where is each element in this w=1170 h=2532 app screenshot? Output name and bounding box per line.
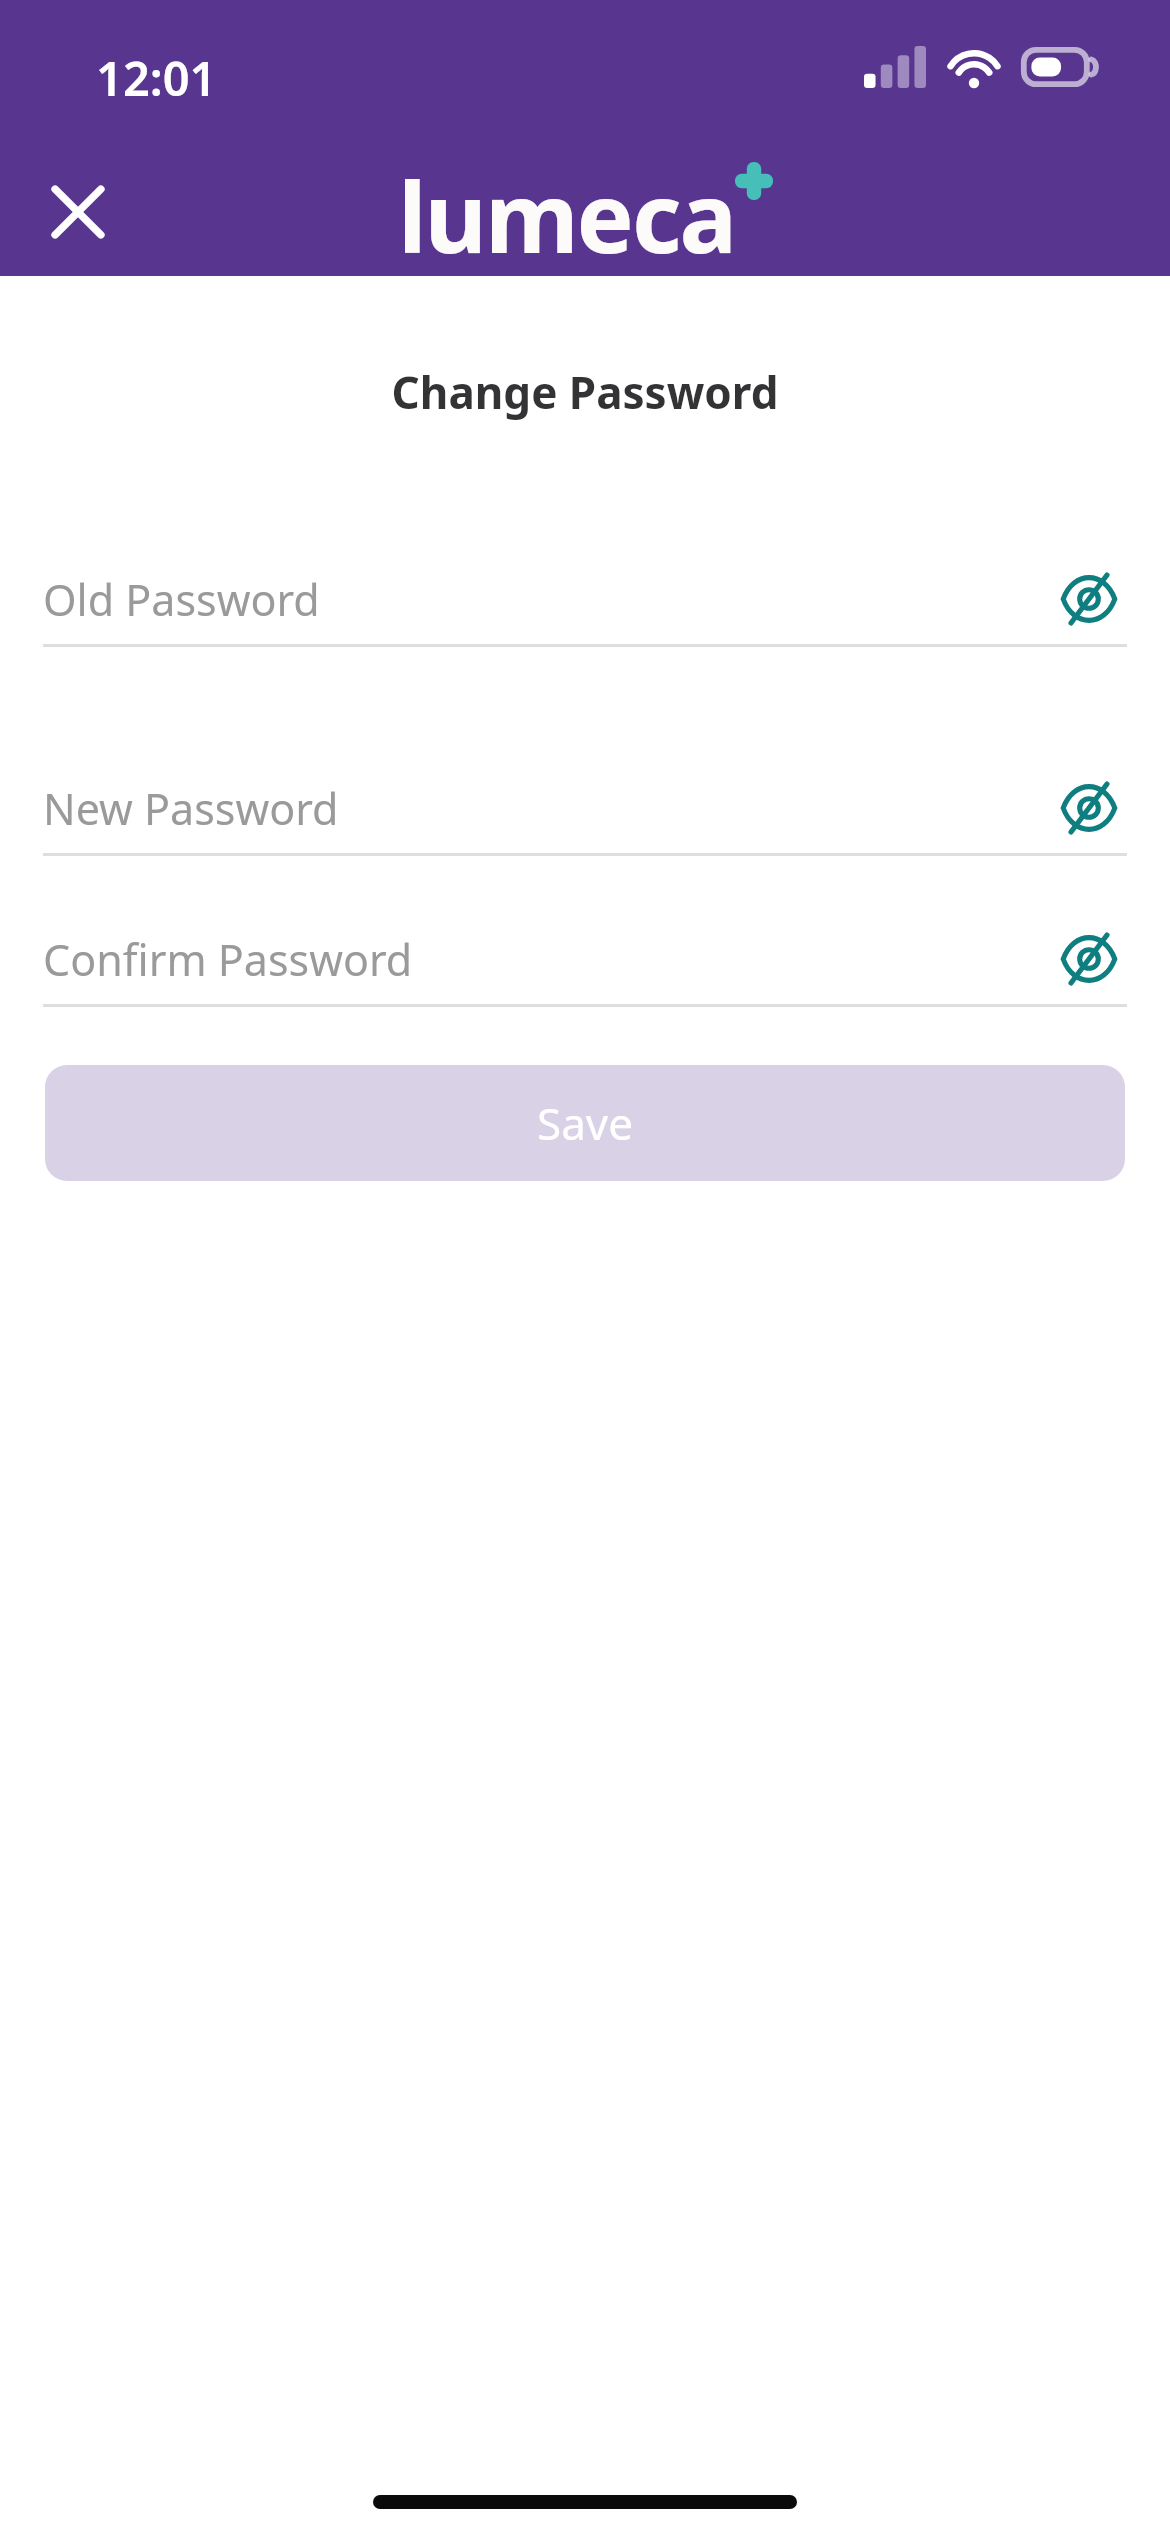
button[interactable]: Save [45,1065,1125,1181]
button[interactable]: Close [28,162,128,262]
button[interactable]: Show password [1051,561,1127,637]
staticText: Change Password [0,362,1170,422]
button[interactable]: Show password [1051,921,1127,997]
staticText: New Password [43,779,1051,838]
staticText: Old Password [43,570,1051,629]
staticText: Confirm Password [43,930,1051,989]
button[interactable]: Old Password [43,554,1127,647]
staticText: 12:01 [96,46,217,110]
button[interactable]: New Password [43,763,1127,856]
button[interactable]: Show password [1051,770,1127,846]
staticText: lumeca [398,150,735,281]
button[interactable]: Confirm Password [43,914,1127,1007]
staticText: Save [537,1093,634,1153]
